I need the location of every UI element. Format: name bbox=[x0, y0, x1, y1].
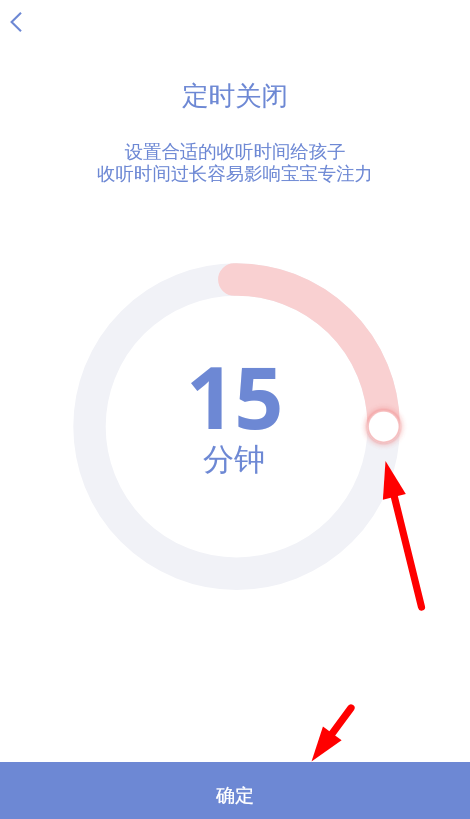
button[interactable]: 确定 bbox=[0, 762, 470, 819]
staticText: 15 bbox=[186, 337, 283, 454]
staticText: 设置合适的收听时间给孩子 收听时间过长容易影响宝宝专注力 bbox=[97, 140, 373, 185]
staticText: 分钟 bbox=[203, 440, 265, 479]
button[interactable]: Timer duration dial, 15 minutes bbox=[63, 253, 410, 600]
staticText: 定时关闭 bbox=[182, 79, 288, 112]
staticText: 确定 bbox=[216, 784, 254, 808]
button[interactable]: Back bbox=[0, 0, 44, 44]
